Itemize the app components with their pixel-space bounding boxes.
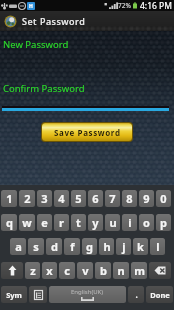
button[interactable]: 0	[156, 190, 171, 207]
staticText: c	[64, 263, 70, 278]
button[interactable]: g	[82, 238, 97, 255]
staticText: q	[6, 215, 13, 230]
staticText: 6	[92, 191, 99, 206]
button[interactable]: k	[133, 238, 148, 255]
staticText: o	[143, 215, 150, 230]
button[interactable]: e	[37, 214, 52, 231]
staticText: 5	[75, 191, 82, 206]
button[interactable]: 9	[139, 190, 154, 207]
staticText: 4	[58, 191, 65, 206]
button[interactable]: Shift	[1, 262, 23, 279]
button[interactable]: 1	[1, 190, 17, 207]
staticText: Done	[150, 290, 170, 300]
button[interactable]: 3	[37, 190, 52, 207]
staticText: y	[92, 215, 99, 230]
staticText: Save Password	[54, 127, 121, 138]
staticText: H	[29, 3, 33, 10]
button[interactable]: j	[116, 238, 131, 255]
staticText: k	[137, 239, 144, 254]
staticText: s	[33, 239, 39, 254]
staticText: 1	[6, 191, 13, 206]
button[interactable]: r	[54, 214, 69, 231]
staticText: h	[103, 239, 111, 254]
staticText: English(UK)	[71, 288, 104, 296]
staticText: 0	[160, 191, 167, 206]
button[interactable]: c	[59, 262, 75, 279]
staticText: l	[156, 239, 160, 254]
staticText: x	[46, 263, 53, 278]
button[interactable]: 8	[122, 190, 137, 207]
staticText: b	[100, 263, 107, 278]
button[interactable]: i	[122, 214, 137, 231]
button[interactable]: Done	[146, 286, 173, 303]
button[interactable]: b	[95, 262, 111, 279]
button[interactable]: 5	[71, 190, 86, 207]
button[interactable]: z	[25, 262, 40, 279]
button[interactable]: 4	[54, 190, 69, 207]
staticText: g	[86, 239, 93, 254]
staticText: f	[70, 239, 75, 254]
staticText: e	[41, 215, 48, 230]
button[interactable]: m	[131, 262, 147, 279]
button[interactable]: d	[46, 238, 62, 255]
button[interactable]: Save Password	[42, 123, 132, 141]
staticText: n	[117, 263, 125, 278]
button[interactable]: l	[150, 238, 165, 255]
staticText: w	[22, 215, 32, 230]
button[interactable]: Keyboard settings	[29, 286, 47, 303]
button[interactable]: w	[19, 214, 35, 231]
staticText: 4:16 PM	[140, 0, 172, 11]
button[interactable]: x	[42, 262, 57, 279]
staticText: v	[82, 263, 89, 278]
button[interactable]: p	[156, 214, 171, 231]
button[interactable]: n	[113, 262, 129, 279]
button[interactable]: Backspace	[149, 262, 171, 279]
staticText: Sym	[6, 290, 22, 300]
staticText: Set Password	[22, 15, 86, 27]
button[interactable]: s	[28, 238, 44, 255]
staticText: 7	[109, 191, 116, 206]
staticText: m	[134, 263, 145, 278]
button[interactable]: Space	[49, 286, 126, 303]
staticText: j	[122, 239, 126, 254]
button[interactable]: a	[10, 238, 26, 255]
staticText: z	[30, 263, 36, 278]
staticText: a	[15, 239, 22, 254]
staticText: t	[76, 215, 81, 230]
staticText: d	[51, 239, 58, 254]
staticText: 9	[143, 191, 150, 206]
staticText: 2	[24, 191, 31, 206]
button[interactable]: New Password	[3, 38, 69, 51]
staticText: 72%	[118, 1, 131, 10]
button[interactable]: 7	[105, 190, 120, 207]
staticText: 3	[41, 191, 48, 206]
button[interactable]: v	[77, 262, 93, 279]
button[interactable]: Sym	[1, 286, 27, 303]
button[interactable]: 2	[19, 190, 35, 207]
staticText: u	[109, 215, 117, 230]
button[interactable]: f	[64, 238, 80, 255]
button[interactable]: q	[1, 214, 17, 231]
button[interactable]: t	[71, 214, 86, 231]
staticText: r	[59, 215, 64, 230]
button[interactable]: u	[105, 214, 120, 231]
staticText: p	[160, 215, 167, 230]
button[interactable]: 6	[88, 190, 103, 207]
staticText: .	[135, 289, 138, 300]
button[interactable]: o	[139, 214, 154, 231]
staticText: 8	[126, 191, 133, 206]
button[interactable]: y	[88, 214, 103, 231]
button[interactable]: .	[128, 286, 144, 303]
staticText: i	[128, 215, 132, 230]
button[interactable]: Set Password	[0, 11, 174, 31]
button[interactable]: Confirm Password	[3, 82, 85, 95]
button[interactable]: h	[99, 238, 114, 255]
